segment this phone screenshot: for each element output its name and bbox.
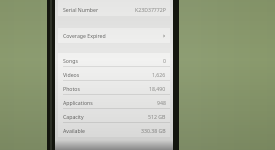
button[interactable]: Applications	[58, 95, 170, 109]
button[interactable]: Coverage Expired	[58, 28, 170, 43]
staticText: Applications	[63, 99, 93, 106]
staticText: K23D37772P	[135, 6, 166, 13]
staticText: 1,626	[152, 71, 166, 78]
button[interactable]: Available	[58, 123, 170, 137]
staticText: 0	[163, 57, 166, 64]
staticText: 948	[157, 99, 166, 106]
button[interactable]: Songs	[58, 53, 170, 67]
staticText: Songs	[63, 57, 78, 64]
staticText: Videos	[63, 71, 80, 78]
staticText: 330.38 GB	[141, 127, 166, 134]
staticText: 18,490	[149, 85, 166, 92]
other: Coverage details	[162, 34, 166, 38]
button[interactable]: Serial Number	[58, 2, 170, 16]
staticText: Capacity	[63, 113, 84, 120]
button[interactable]: Capacity	[58, 109, 170, 123]
staticText: Serial Number	[63, 6, 99, 13]
button[interactable]: Photos	[58, 81, 170, 95]
staticText: Available	[63, 127, 85, 134]
staticText: 512 GB	[148, 113, 166, 120]
staticText: Coverage Expired	[63, 32, 106, 39]
button[interactable]: Videos	[58, 67, 170, 81]
staticText: Photos	[63, 85, 80, 92]
